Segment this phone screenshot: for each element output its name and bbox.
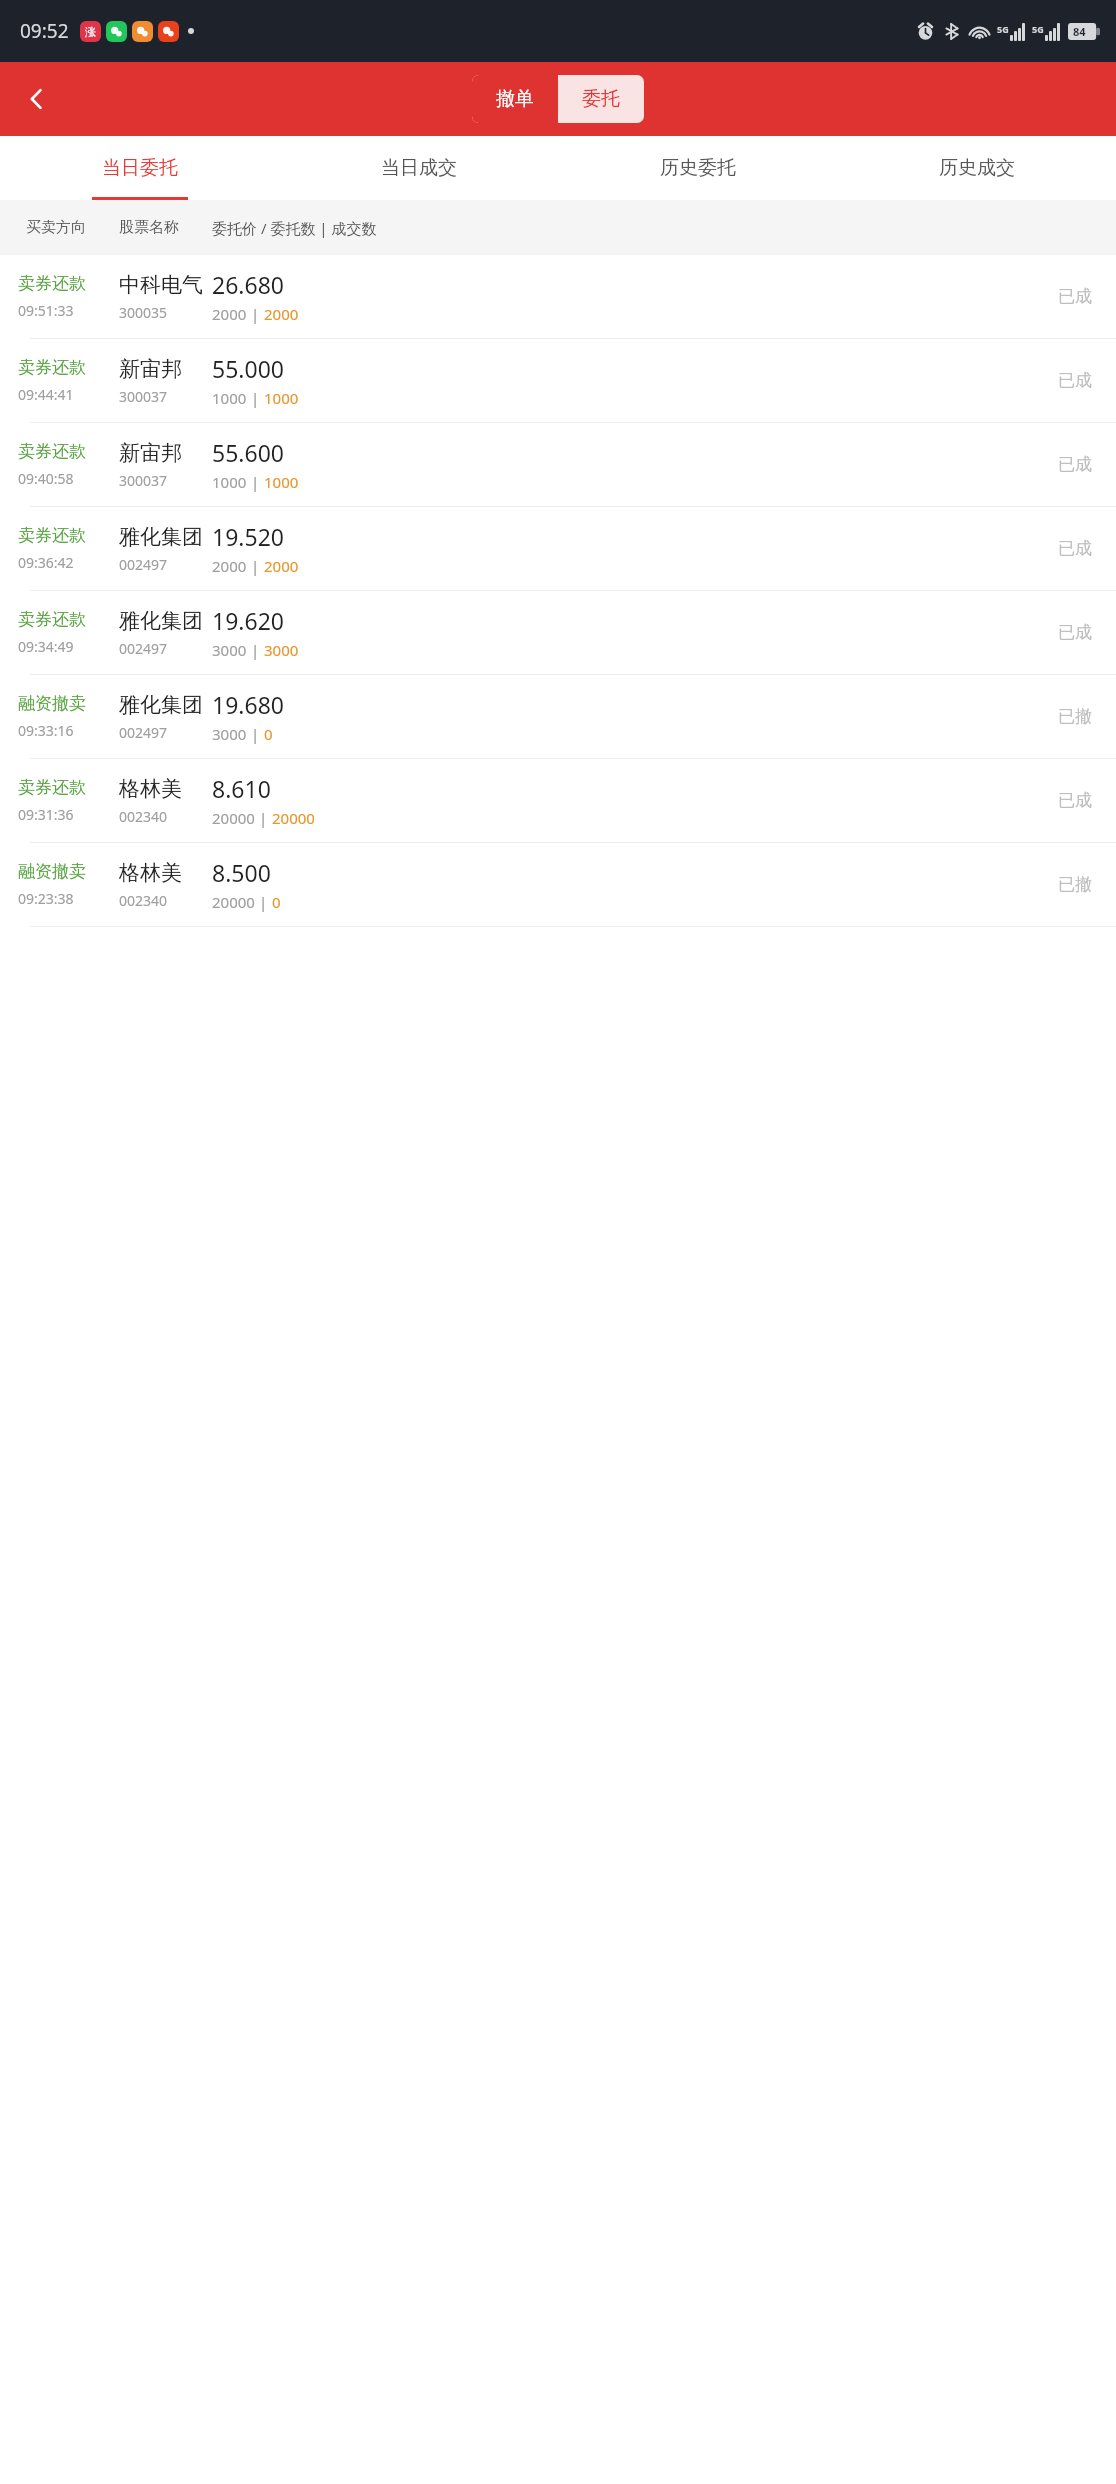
- staticText: 涨: [85, 25, 96, 39]
- staticText: 撤单: [496, 87, 534, 111]
- button[interactable]: 卖券还款: [0, 423, 1116, 506]
- staticText: 已成: [1058, 454, 1092, 475]
- staticText: 8.610: [212, 773, 271, 804]
- staticText: 卖券还款: [18, 609, 86, 630]
- staticText: 已成: [1058, 286, 1092, 307]
- staticText: 84: [1073, 24, 1086, 39]
- button[interactable]: 卖券还款: [0, 507, 1116, 590]
- staticText: 买卖方向: [26, 218, 86, 237]
- staticText: 委托价 / 委托数 | 成交数: [212, 218, 377, 238]
- staticText: 已成: [1058, 622, 1092, 643]
- staticText: 09:44:41: [18, 385, 74, 404]
- staticText: 09:36:42: [18, 553, 74, 572]
- staticText: 09:40:58: [18, 469, 74, 488]
- staticText: 融资撤卖: [18, 861, 86, 882]
- staticText: 09:31:36: [18, 805, 74, 824]
- staticText: |: [247, 556, 264, 576]
- button[interactable]: 当日委托: [0, 136, 279, 200]
- staticText: 格林美: [119, 776, 182, 802]
- staticText: 当日成交: [381, 156, 457, 180]
- staticText: 002497: [119, 555, 168, 574]
- staticText: 2000: [212, 304, 247, 324]
- staticText: 1000: [212, 472, 247, 492]
- staticText: 中科电气: [119, 272, 203, 298]
- staticText: 300037: [119, 471, 168, 490]
- staticText: |: [247, 472, 264, 492]
- staticText: |: [247, 724, 264, 744]
- button[interactable]: 委托: [558, 75, 644, 123]
- staticText: 300035: [119, 303, 168, 322]
- staticText: 已撤: [1058, 874, 1092, 895]
- staticText: 0: [272, 892, 281, 912]
- staticText: 委托: [582, 87, 620, 111]
- staticText: 新宙邦: [119, 440, 182, 466]
- staticText: 8.500: [212, 857, 271, 888]
- staticText: 雅化集团: [119, 608, 203, 634]
- staticText: 002497: [119, 723, 168, 742]
- staticText: 已成: [1058, 370, 1092, 391]
- button[interactable]: 返回: [10, 72, 64, 126]
- staticText: 300037: [119, 387, 168, 406]
- staticText: |: [255, 892, 272, 912]
- staticText: 20000: [272, 808, 315, 828]
- button[interactable]: 当日成交: [279, 136, 558, 200]
- staticText: 1000: [264, 472, 299, 492]
- button[interactable]: 卖券还款: [0, 759, 1116, 842]
- button[interactable]: 历史成交: [837, 136, 1116, 200]
- staticText: 格林美: [119, 860, 182, 886]
- staticText: 已成: [1058, 538, 1092, 559]
- button[interactable]: 卖券还款: [0, 255, 1116, 338]
- staticText: 20000: [212, 808, 255, 828]
- staticText: 55.000: [212, 353, 284, 384]
- staticText: 20000: [212, 892, 255, 912]
- staticText: 历史委托: [660, 156, 736, 180]
- staticText: 3000: [212, 640, 247, 660]
- staticText: 已撤: [1058, 706, 1092, 727]
- staticText: 09:52: [20, 18, 69, 44]
- staticText: 3000: [264, 640, 299, 660]
- staticText: 已成: [1058, 790, 1092, 811]
- staticText: 2000: [264, 556, 299, 576]
- staticText: |: [255, 808, 272, 828]
- staticText: 卖券还款: [18, 441, 86, 462]
- staticText: 5G: [1032, 23, 1044, 35]
- staticText: 002497: [119, 639, 168, 658]
- staticText: |: [247, 388, 264, 408]
- staticText: 卖券还款: [18, 525, 86, 546]
- staticText: 19.620: [212, 605, 284, 636]
- button[interactable]: 融资撤卖: [0, 843, 1116, 926]
- staticText: 卖券还款: [18, 357, 86, 378]
- staticText: 卖券还款: [18, 777, 86, 798]
- staticText: 0: [264, 724, 273, 744]
- staticText: 55.600: [212, 437, 284, 468]
- button[interactable]: 历史委托: [558, 136, 837, 200]
- staticText: 002340: [119, 807, 168, 826]
- staticText: 5G: [997, 23, 1009, 35]
- staticText: 09:23:38: [18, 889, 74, 908]
- staticText: 19.520: [212, 521, 284, 552]
- staticText: 002340: [119, 891, 168, 910]
- staticText: 当日委托: [102, 156, 178, 180]
- staticText: 09:33:16: [18, 721, 74, 740]
- staticText: 历史成交: [939, 156, 1015, 180]
- staticText: 09:34:49: [18, 637, 74, 656]
- staticText: 卖券还款: [18, 273, 86, 294]
- staticText: 3000: [212, 724, 247, 744]
- staticText: |: [247, 640, 264, 660]
- staticText: 新宙邦: [119, 356, 182, 382]
- button[interactable]: 卖券还款: [0, 591, 1116, 674]
- staticText: 雅化集团: [119, 524, 203, 550]
- staticText: 09:51:33: [18, 301, 74, 320]
- staticText: 雅化集团: [119, 692, 203, 718]
- staticText: 19.680: [212, 689, 284, 720]
- staticText: 1000: [212, 388, 247, 408]
- staticText: 2000: [212, 556, 247, 576]
- staticText: |: [247, 304, 264, 324]
- staticText: 26.680: [212, 269, 284, 300]
- staticText: 1000: [264, 388, 299, 408]
- button[interactable]: 撤单: [472, 75, 558, 123]
- button[interactable]: 卖券还款: [0, 339, 1116, 422]
- button[interactable]: 融资撤卖: [0, 675, 1116, 758]
- staticText: 股票名称: [119, 218, 179, 237]
- staticText: 2000: [264, 304, 299, 324]
